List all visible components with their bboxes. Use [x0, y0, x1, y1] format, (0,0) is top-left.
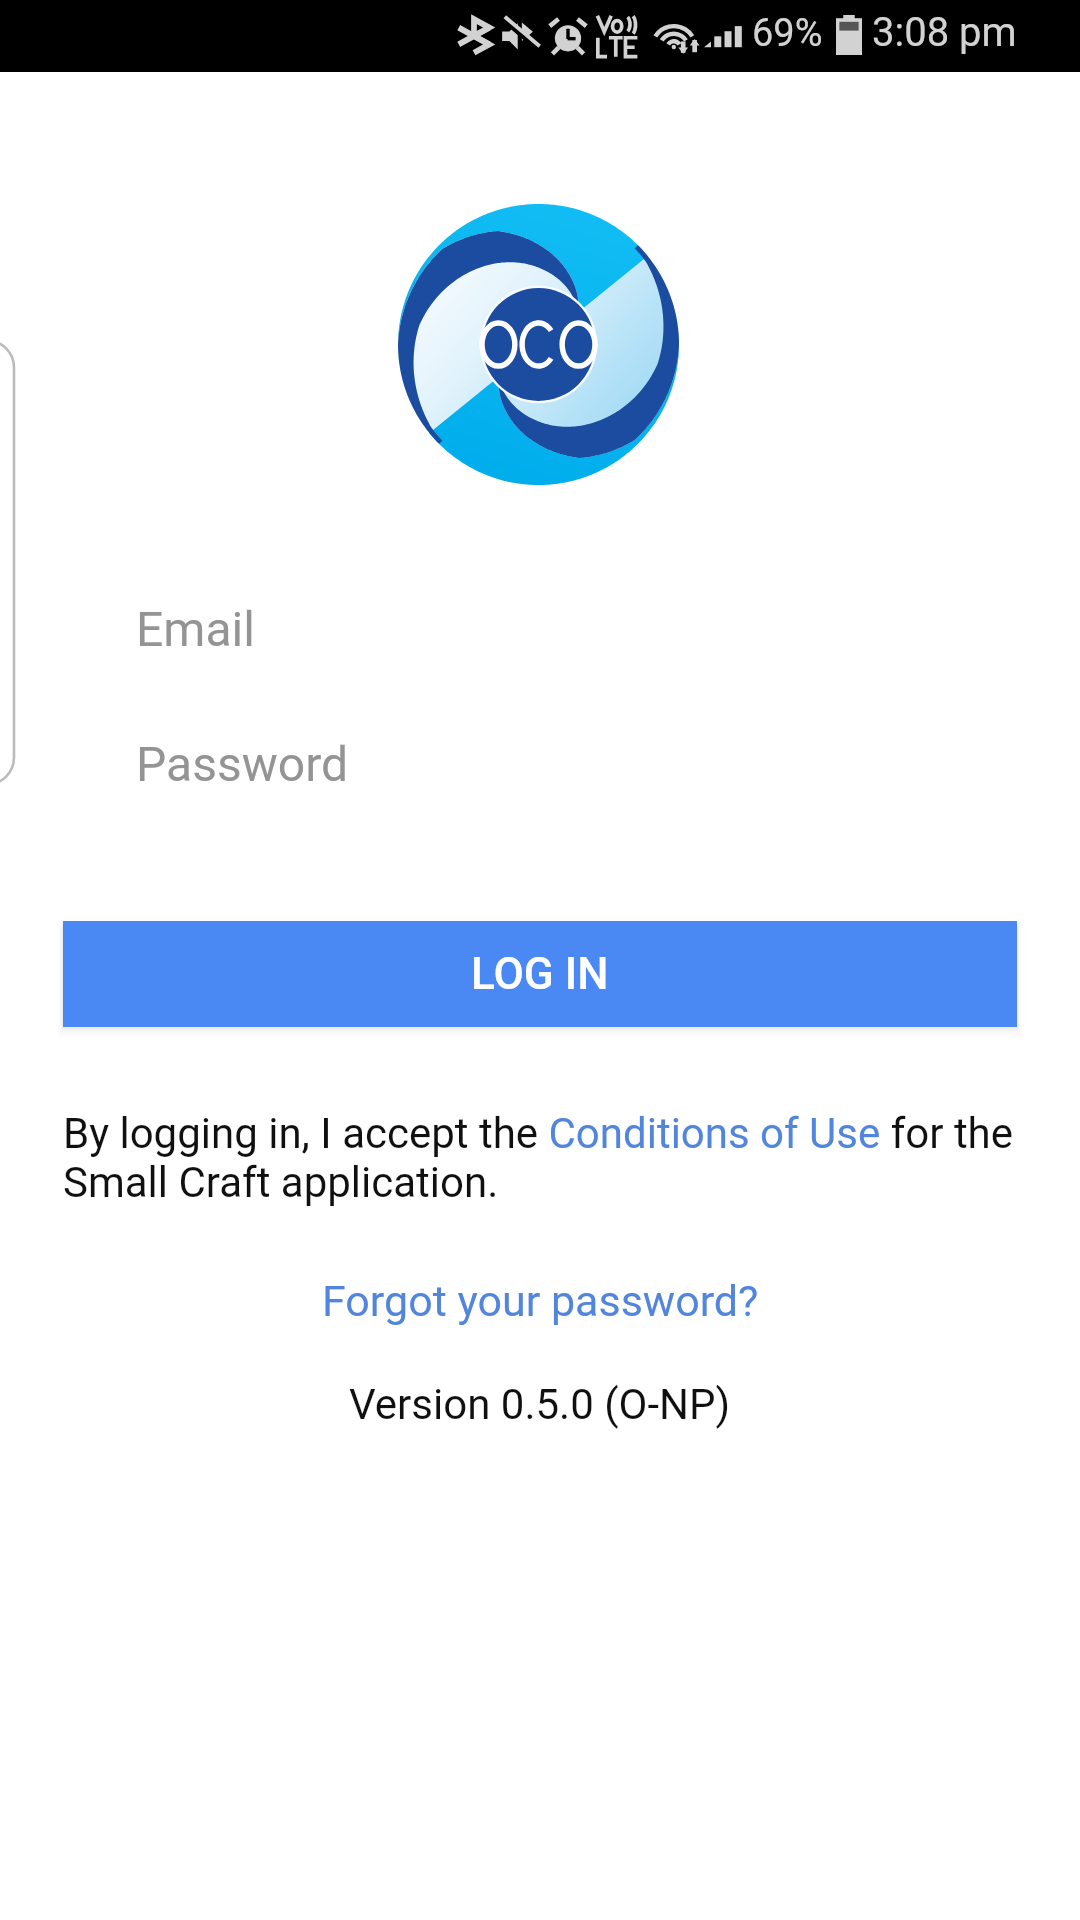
staticText: 69%: [752, 11, 823, 56]
staticText: By logging in, I accept the Conditions o…: [63, 1109, 1023, 1207]
staticText: Forgot your password?: [322, 1276, 759, 1326]
button[interactable]: Email: [0, 601, 1080, 663]
button[interactable]: Forgot your password?: [322, 1276, 759, 1326]
staticText: Version 0.5.0 (O-NP): [349, 1380, 731, 1429]
button[interactable]: Password: [0, 736, 1080, 798]
staticText: 3:08 pm: [872, 9, 1017, 56]
staticText: Password: [136, 736, 349, 792]
staticText: Email: [136, 601, 255, 657]
button[interactable]: LOG IN: [63, 921, 1017, 1027]
staticText: LOG IN: [471, 948, 609, 1000]
